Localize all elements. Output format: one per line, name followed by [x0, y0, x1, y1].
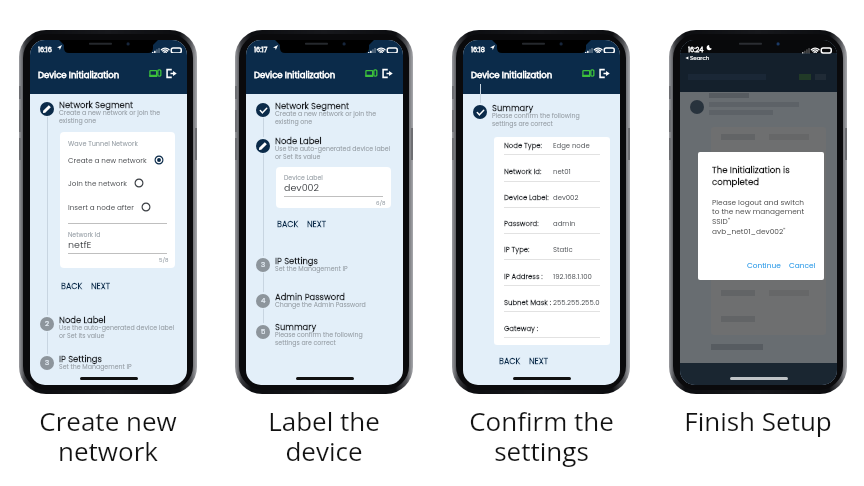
staticText: 5	[261, 327, 266, 337]
staticText: Network Id:	[504, 167, 542, 177]
staticText: 16:16	[38, 45, 52, 54]
staticText: Please confirm the following settings ar…	[275, 330, 363, 347]
staticText: IP Type:	[504, 245, 530, 255]
button[interactable]: Search	[685, 54, 710, 62]
staticText: 3	[45, 358, 50, 368]
staticText: BACK	[61, 281, 83, 292]
staticText: Node Label	[59, 314, 106, 326]
button[interactable]: Cancel	[787, 258, 818, 272]
staticText: 255.255.255.0	[553, 298, 600, 308]
staticText: 5/8	[159, 256, 169, 264]
staticText: Device Initialization	[471, 69, 553, 81]
staticText: 6/8	[376, 199, 386, 207]
staticText: Edge node	[553, 141, 590, 151]
staticText: BACK	[499, 356, 521, 367]
staticText: Device Initialization	[254, 69, 336, 81]
button[interactable]: NEXT	[306, 217, 328, 232]
button[interactable]: Devices	[365, 67, 378, 80]
staticText: NEXT	[91, 281, 111, 292]
staticText: netfE	[68, 238, 92, 251]
staticText: Subnet Mask :	[504, 298, 552, 308]
staticText: Device Initialization	[38, 69, 120, 81]
staticText: Finish Setup	[684, 403, 832, 438]
button[interactable]: NEXT	[528, 354, 550, 369]
button[interactable]: BACK	[60, 279, 84, 294]
staticText: BACK	[277, 219, 299, 230]
staticText: The Initialization is completed	[712, 164, 790, 188]
button[interactable]: Devices	[582, 67, 595, 80]
staticText: IP Address :	[504, 272, 543, 282]
staticText: admin	[553, 219, 576, 229]
staticText: 3	[261, 260, 266, 270]
staticText: Password:	[504, 219, 539, 229]
button[interactable]: Continue	[745, 258, 783, 272]
staticText: Label the device	[268, 403, 380, 469]
staticText: Confirm the settings	[469, 403, 614, 469]
button[interactable]: Devices	[149, 67, 162, 80]
staticText: Insert a node after	[68, 202, 134, 212]
staticText: NEXT	[529, 356, 549, 367]
button[interactable]: Logout	[381, 67, 394, 80]
staticText: Change the Admin Password	[275, 300, 366, 309]
staticText: Static	[553, 245, 573, 255]
staticText: Please logout and switch to the new mana…	[712, 197, 805, 237]
staticText: Set the Management IP	[275, 264, 348, 273]
staticText: Summary	[275, 321, 317, 333]
button[interactable]: BACK	[498, 354, 522, 369]
staticText: Create a new network	[68, 155, 147, 165]
staticText: Please confirm the following settings ar…	[492, 111, 580, 128]
staticText: 4	[261, 296, 266, 306]
staticText: dev002	[284, 181, 320, 194]
staticText: Continue	[747, 260, 781, 270]
staticText: 192.168.1.100	[553, 272, 592, 282]
button[interactable]: BACK	[276, 217, 300, 232]
button[interactable]: Logout	[598, 67, 611, 80]
staticText: 16:24	[688, 45, 704, 54]
staticText: Search	[690, 54, 710, 62]
staticText: Device Label:	[504, 193, 549, 203]
staticText: Cancel	[789, 260, 816, 270]
staticText: Set the Management IP	[59, 362, 132, 371]
staticText: 16:17	[254, 45, 268, 54]
staticText: Create a new network or join the existin…	[275, 109, 377, 126]
staticText: Network Id	[68, 230, 101, 239]
staticText: Admin Password	[275, 291, 345, 303]
staticText: net01	[553, 167, 571, 177]
staticText: Node Type:	[504, 141, 543, 151]
staticText: dev002	[553, 193, 579, 203]
staticText: 16:18	[471, 45, 485, 54]
button[interactable]: Create a new network	[62, 153, 170, 167]
staticText: Node Label	[275, 135, 322, 147]
staticText: 2	[45, 319, 50, 329]
staticText: Gateway :	[504, 324, 539, 334]
staticText: Create new network	[39, 403, 177, 469]
staticText: Summary	[492, 102, 534, 114]
button[interactable]: NEXT	[90, 279, 112, 294]
staticText: IP Settings	[59, 353, 102, 365]
staticText: Use the auto-generated device label or S…	[59, 323, 175, 340]
button[interactable]: Insert a node after	[62, 200, 157, 214]
staticText: Device Label	[284, 173, 323, 182]
staticText: Use the auto-generated device label or S…	[275, 144, 391, 161]
staticText: Network Segment	[275, 100, 350, 112]
staticText: Wave Tunnel Network	[68, 139, 138, 148]
staticText: NEXT	[307, 219, 327, 230]
button[interactable]: Logout	[165, 67, 178, 80]
button[interactable]: Join the network	[62, 176, 150, 190]
staticText: Create a new network or join the existin…	[59, 108, 161, 125]
staticText: Network Segment	[59, 99, 134, 111]
staticText: Join the network	[68, 178, 127, 188]
staticText: IP Settings	[275, 255, 318, 267]
